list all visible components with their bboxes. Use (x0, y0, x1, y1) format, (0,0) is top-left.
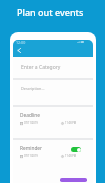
staticText: Plan out events (17, 6, 84, 18)
staticText: 12:00 (16, 40, 26, 45)
staticText: 11:00 PM (65, 154, 77, 158)
staticText: Description... (21, 86, 45, 91)
staticText: Deadline (20, 112, 40, 119)
button[interactable]: Reminder (13, 140, 93, 183)
staticText: 11:00 PM (65, 121, 77, 125)
button[interactable]: Enter a Category (13, 57, 93, 78)
button[interactable]: Save (60, 178, 87, 182)
staticText: 07/11/2019 (24, 154, 38, 158)
button[interactable]: Deadline (13, 107, 93, 138)
button[interactable]: Back (14, 46, 23, 55)
button[interactable]: Description... (13, 80, 93, 105)
staticText: Enter a Category (21, 64, 61, 71)
button[interactable]: Reminder toggle (71, 147, 81, 152)
staticText: Reminder (20, 145, 43, 152)
staticText: 07/11/2019 (24, 121, 38, 125)
